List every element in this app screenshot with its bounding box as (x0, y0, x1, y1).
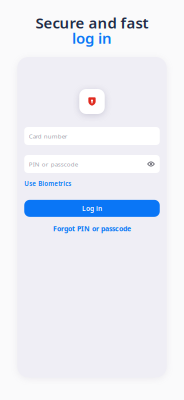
button[interactable]: Forgot PIN or passcode (53, 224, 131, 233)
staticText: Forgot PIN or passcode (53, 224, 131, 233)
staticText: PIN or passcode (29, 160, 78, 168)
staticText: Card number (29, 132, 68, 140)
button[interactable]: Log in (24, 200, 160, 217)
button[interactable]: Use Biometrics (24, 179, 71, 188)
staticText: Use Biometrics (24, 179, 71, 188)
staticText: Log in (82, 204, 102, 213)
staticText: Secure and fast (35, 12, 148, 33)
staticText: log in (72, 28, 112, 48)
